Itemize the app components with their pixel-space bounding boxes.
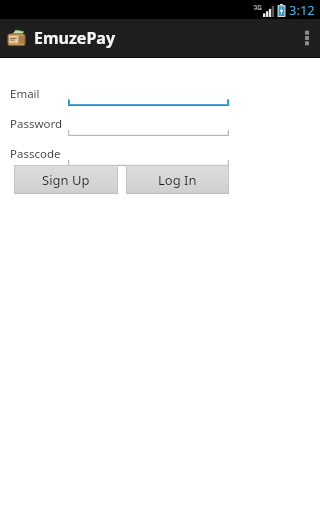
button[interactable]: Passcode	[68, 142, 229, 166]
staticText: 3:12	[289, 1, 315, 19]
button[interactable]: Sign Up	[14, 165, 118, 194]
staticText: Sign Up	[42, 171, 90, 189]
staticText: Password	[10, 116, 63, 132]
button[interactable]: Password	[68, 112, 229, 136]
staticText: EmuzePay	[34, 27, 116, 49]
staticText: Log In	[158, 171, 197, 189]
staticText: Passcode	[10, 146, 61, 162]
button[interactable]: More options	[294, 19, 320, 57]
staticText: Email	[10, 86, 40, 102]
button[interactable]: Log In	[126, 165, 229, 194]
button[interactable]: Email	[68, 82, 229, 106]
